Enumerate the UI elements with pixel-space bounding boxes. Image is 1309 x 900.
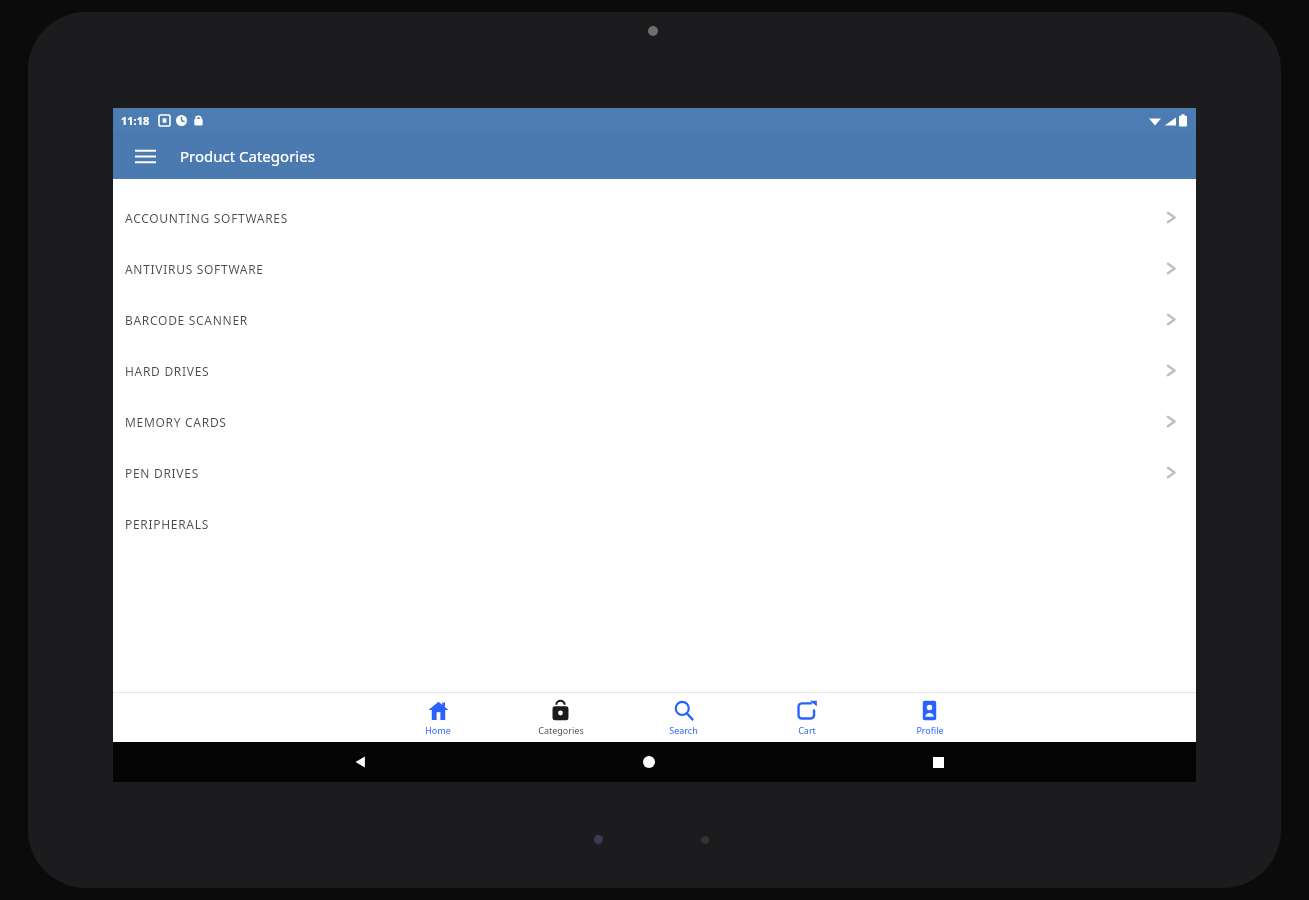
staticText: MEMORY CARDS: [125, 414, 1167, 430]
button[interactable]: ACCOUNTING SOFTWARES: [113, 192, 1196, 243]
staticText: Categories: [538, 724, 584, 736]
button[interactable]: Open navigation menu: [125, 136, 165, 176]
button[interactable]: PEN DRIVES: [113, 447, 1196, 498]
staticText: BARCODE SCANNER: [125, 312, 1167, 328]
button[interactable]: Categories: [499, 700, 622, 736]
button[interactable]: Cart: [745, 700, 868, 736]
staticText: Product Categories: [180, 146, 315, 166]
button[interactable]: ANTIVIRUS SOFTWARE: [113, 243, 1196, 294]
staticText: Home: [425, 724, 451, 736]
button[interactable]: Home: [629, 742, 669, 782]
button[interactable]: Home: [377, 700, 499, 736]
staticText: ACCOUNTING SOFTWARES: [125, 210, 1167, 226]
button[interactable]: HARD DRIVES: [113, 345, 1196, 396]
button[interactable]: MEMORY CARDS: [113, 396, 1196, 447]
button[interactable]: Back: [340, 742, 380, 782]
staticText: HARD DRIVES: [125, 363, 1167, 379]
staticText: PERIPHERALS: [125, 516, 1176, 532]
button[interactable]: Search: [622, 700, 745, 736]
button[interactable]: BARCODE SCANNER: [113, 294, 1196, 345]
staticText: ANTIVIRUS SOFTWARE: [125, 261, 1167, 277]
staticText: Search: [669, 724, 698, 736]
staticText: Profile: [916, 724, 944, 736]
staticText: Cart: [798, 724, 816, 736]
staticText: PEN DRIVES: [125, 465, 1167, 481]
staticText: 11:18: [121, 113, 150, 128]
button[interactable]: PERIPHERALS: [113, 498, 1196, 549]
button[interactable]: Recent apps: [918, 742, 958, 782]
button[interactable]: Profile: [868, 700, 991, 736]
